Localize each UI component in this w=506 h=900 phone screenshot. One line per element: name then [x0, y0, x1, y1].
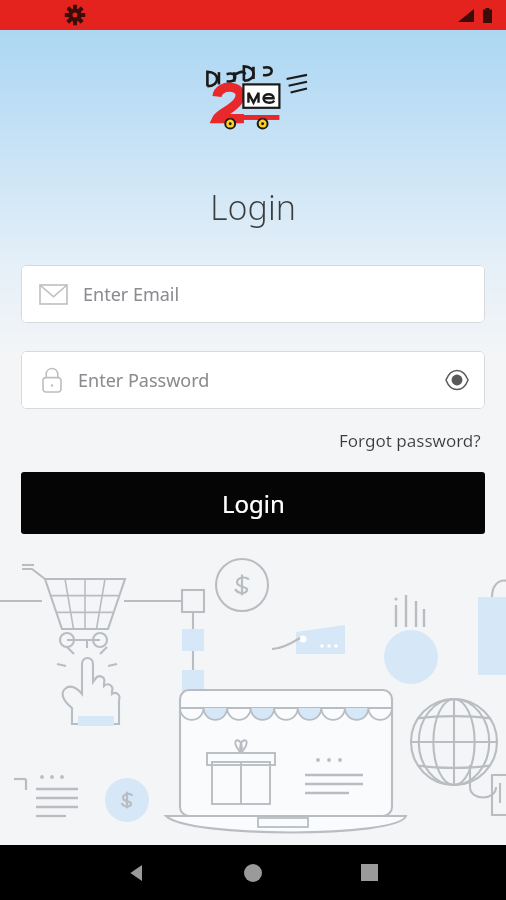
- button[interactable]: Show password: [445, 372, 469, 388]
- staticText: Enter Email: [83, 282, 180, 307]
- button[interactable]: Enter Password: [21, 351, 485, 409]
- button[interactable]: Login: [21, 472, 485, 534]
- button[interactable]: Recent apps: [311, 845, 428, 900]
- button[interactable]: Back: [78, 845, 194, 900]
- button[interactable]: Home: [194, 845, 311, 900]
- staticText: Login: [210, 184, 297, 230]
- staticText: Login: [222, 487, 285, 520]
- other: Settings: [64, 4, 86, 26]
- button[interactable]: Forgot password?: [335, 425, 485, 456]
- staticText: Enter Password: [78, 368, 210, 393]
- staticText: Forgot password?: [339, 429, 481, 452]
- button[interactable]: Enter Email: [21, 265, 485, 323]
